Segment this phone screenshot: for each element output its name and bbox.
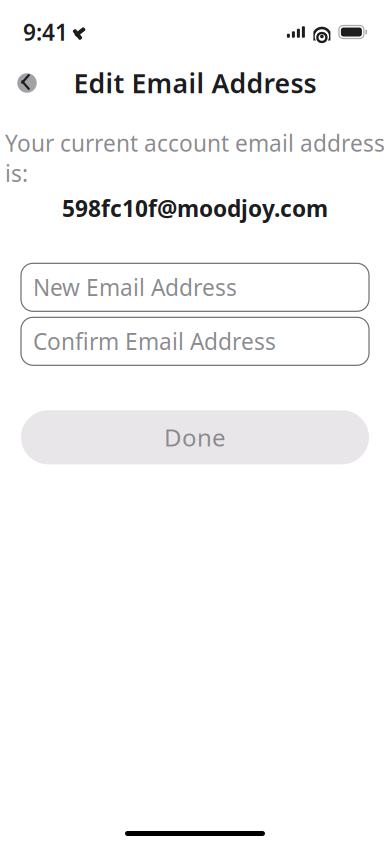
staticText: Done xyxy=(164,421,226,453)
staticText: Confirm Email Address xyxy=(33,326,276,356)
staticText: 9:41 xyxy=(23,17,68,47)
staticText: Your current account email address is: xyxy=(5,128,385,188)
button[interactable]: Done xyxy=(21,410,369,464)
button[interactable]: New Email Address xyxy=(21,263,369,311)
button[interactable]: Confirm Email Address xyxy=(21,317,369,365)
staticText: 598fc10f@moodjoy.com xyxy=(62,193,328,223)
button[interactable]: Back xyxy=(10,66,44,100)
staticText: Edit Email Address xyxy=(73,65,316,101)
staticText: New Email Address xyxy=(33,272,237,302)
